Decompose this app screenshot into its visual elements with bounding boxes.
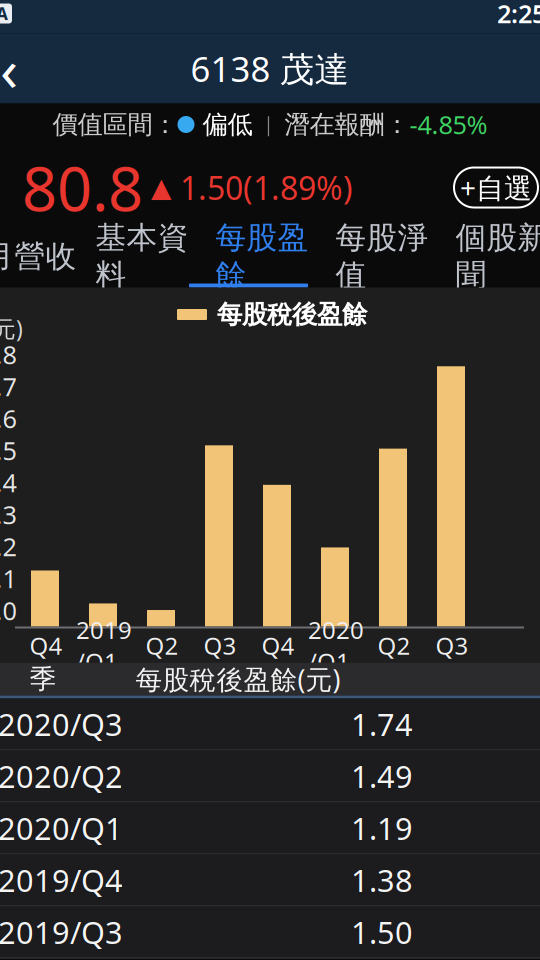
staticText: 價值區間： xyxy=(52,109,177,140)
staticText: Q2 xyxy=(145,630,178,661)
staticText: 每股盈餘 xyxy=(215,219,308,294)
staticText: Q3 xyxy=(435,630,468,661)
staticText: 1.1 xyxy=(0,562,16,595)
staticText: A xyxy=(0,2,8,25)
staticText: ｜ xyxy=(258,112,278,137)
staticText: 2:25 xyxy=(497,0,540,30)
staticText: 1.7 xyxy=(0,370,16,403)
staticText: -4.85% xyxy=(409,108,487,141)
staticText: 1.50 xyxy=(351,912,413,952)
staticText: 2020/Q1 xyxy=(0,808,123,848)
staticText: 2020/Q3 xyxy=(0,704,123,744)
staticText: Q3 xyxy=(203,630,236,661)
staticText: 每股淨值 xyxy=(335,219,428,294)
staticText: 1.6 xyxy=(0,402,16,435)
staticText: 潛在報酬： xyxy=(284,109,409,140)
button[interactable]: 2019/Q3 xyxy=(0,906,540,958)
staticText: 1.74 xyxy=(351,704,413,744)
staticText: 1.2 xyxy=(0,530,16,563)
button[interactable]: 2019/Q4 xyxy=(0,854,540,906)
staticText: 偏低 xyxy=(202,109,252,140)
button[interactable]: 月營收 xyxy=(0,229,82,283)
staticText: 每股稅後盈餘(元) xyxy=(135,661,340,697)
staticText: 月營收 xyxy=(0,238,76,275)
staticText: 2019/Q1 xyxy=(76,614,132,677)
staticText: 1.50(1.89%) xyxy=(180,166,353,209)
button[interactable]: 基本資料 xyxy=(82,229,202,283)
button[interactable]: 個股新聞 xyxy=(442,229,540,283)
staticText: 1.5 xyxy=(0,434,16,467)
staticText: 1.19 xyxy=(351,808,413,848)
staticText: 1.49 xyxy=(351,756,413,796)
staticText: +自選 xyxy=(460,169,532,206)
staticText: 80.8 xyxy=(22,147,143,228)
staticText: 1.38 xyxy=(351,860,413,900)
staticText: 個股新聞 xyxy=(455,219,540,294)
staticText: (元) xyxy=(0,313,23,343)
button[interactable]: 2020/Q2 xyxy=(0,750,540,802)
staticText: Q2 xyxy=(377,630,410,661)
staticText: 季 xyxy=(29,663,56,695)
button[interactable]: +自選 xyxy=(454,167,538,207)
button[interactable]: 每股盈餘 xyxy=(202,229,322,283)
staticText: 2020/Q1 xyxy=(308,614,364,677)
staticText: 1.0 xyxy=(0,594,16,627)
staticText: 2020/Q2 xyxy=(0,756,123,796)
button[interactable]: 每股淨值 xyxy=(322,229,442,283)
staticText: 每股稅後盈餘 xyxy=(217,299,367,330)
staticText: Q4 xyxy=(261,630,294,661)
staticText: 基本資料 xyxy=(95,219,188,294)
staticText: ‹ xyxy=(0,29,18,107)
staticText: ▲ xyxy=(143,172,180,203)
button[interactable]: 2020/Q3 xyxy=(0,698,540,750)
staticText: 2019/Q3 xyxy=(0,912,123,952)
staticText: Q4 xyxy=(29,630,62,661)
staticText: 1.4 xyxy=(0,466,16,499)
staticText: 6138 茂達 xyxy=(190,45,349,91)
staticText: 2019/Q4 xyxy=(0,860,123,900)
button[interactable]: 2020/Q1 xyxy=(0,802,540,854)
staticText: 1.8 xyxy=(0,338,16,371)
button[interactable]: Back xyxy=(0,35,40,101)
staticText: 1.3 xyxy=(0,498,16,531)
